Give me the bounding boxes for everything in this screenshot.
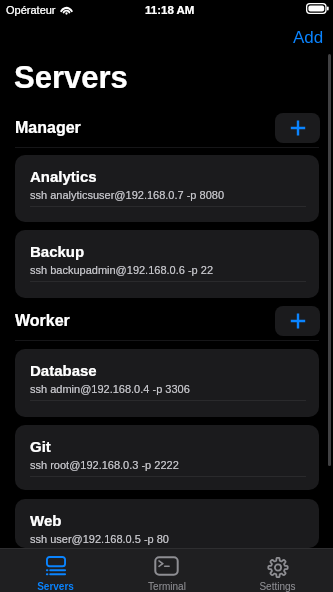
staticText: Terminal (148, 581, 186, 592)
button[interactable]: Servers (0, 549, 111, 592)
button[interactable]: Add (285, 24, 332, 51)
button[interactable]: Git (15, 425, 319, 490)
staticText: ssh root@192.168.0.3 -p 2222 (30, 459, 179, 471)
staticText: ssh admin@192.168.0.4 -p 3306 (30, 383, 190, 395)
staticText: ssh backupadmin@192.168.0.6 -p 22 (30, 264, 214, 276)
button[interactable]: Settings (222, 549, 333, 592)
staticText: Web (30, 512, 62, 529)
staticText: Opérateur (6, 4, 56, 16)
button[interactable]: Web (15, 499, 319, 548)
button[interactable]: Database (15, 349, 319, 417)
staticText: Add (293, 28, 324, 47)
staticText: Servers (37, 581, 74, 592)
button[interactable]: Add Manager server (275, 113, 320, 143)
button[interactable]: Terminal (111, 549, 222, 592)
staticText: Backup (30, 243, 85, 260)
staticText: Servers (14, 60, 128, 95)
staticText: Analytics (30, 168, 97, 185)
button[interactable]: Backup (15, 230, 319, 298)
staticText: Manager (15, 119, 81, 137)
staticText: Database (30, 362, 97, 379)
button[interactable]: Add Worker server (275, 306, 320, 336)
staticText: Git (30, 438, 51, 455)
staticText: Settings (259, 581, 296, 592)
staticText: ssh user@192.168.0.5 -p 80 (30, 533, 169, 545)
staticText: 11:18 AM (145, 4, 195, 17)
button[interactable]: Analytics (15, 155, 319, 222)
staticText: Worker (15, 312, 70, 330)
staticText: ssh analyticsuser@192.168.0.7 -p 8080 (30, 189, 225, 201)
